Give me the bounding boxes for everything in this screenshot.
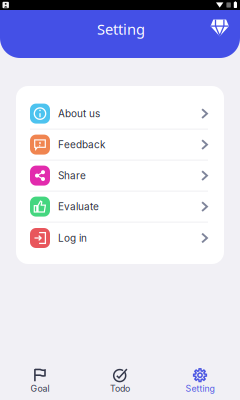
staticText: Log in (58, 232, 87, 244)
button[interactable]: About us (16, 98, 224, 129)
staticText: Todo (110, 383, 130, 394)
staticText: Setting (185, 383, 214, 394)
button[interactable]: Share (16, 160, 224, 191)
staticText: Evaluate (58, 201, 99, 213)
button[interactable]: Log in (16, 222, 224, 253)
button[interactable]: Premium (210, 19, 229, 36)
staticText: Goal (30, 383, 49, 394)
staticText: Feedback (58, 139, 105, 151)
staticText: Setting (97, 19, 145, 39)
staticText: Share (58, 170, 86, 182)
button[interactable]: Setting (160, 364, 240, 398)
button[interactable]: Evaluate (16, 191, 224, 222)
button[interactable]: Feedback (16, 129, 224, 160)
button[interactable]: Goal (0, 364, 80, 398)
staticText: About us (58, 108, 100, 120)
button[interactable]: Todo (80, 364, 160, 398)
